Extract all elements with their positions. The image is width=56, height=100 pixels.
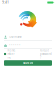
button[interactable]: SIGN IN	[4, 60, 52, 66]
staticText: SIGN IN	[23, 61, 33, 65]
button[interactable]: Remember me	[4, 52, 24, 56]
staticText: Forgot password?	[40, 49, 52, 59]
button[interactable]: Forgot password?	[32, 52, 52, 56]
staticText: Username	[9, 35, 22, 39]
staticText: 9:41	[2, 1, 9, 4]
staticText: • • • • • •	[9, 43, 20, 47]
staticText: Remember me	[7, 49, 16, 59]
